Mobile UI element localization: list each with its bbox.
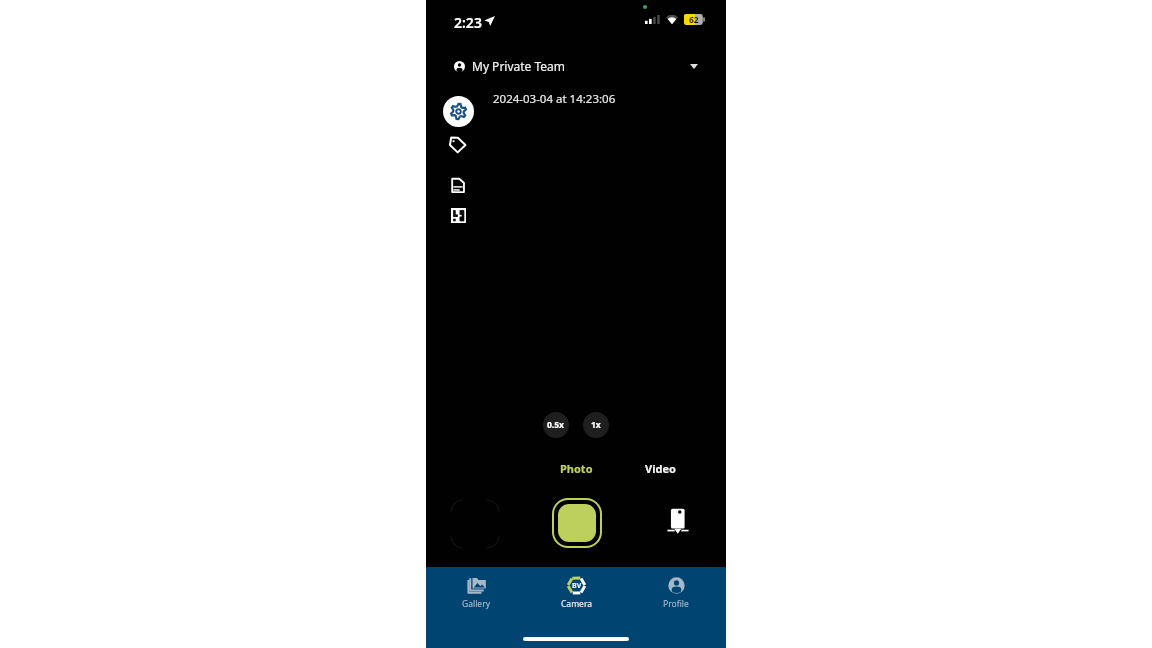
button[interactable]: My Private Team — [454, 54, 704, 78]
staticText: BV — [572, 581, 582, 591]
staticText: Gallery — [462, 598, 490, 610]
button[interactable]: 1x — [583, 412, 609, 438]
button[interactable]: Notes — [449, 176, 467, 194]
staticText: Camera — [561, 598, 592, 610]
button[interactable]: Gallery — [452, 575, 500, 610]
staticText: Video — [645, 461, 676, 476]
staticText: 1x — [591, 419, 601, 431]
button[interactable]: Scan code — [449, 206, 467, 224]
button[interactable]: Tags — [447, 136, 467, 154]
staticText: 0.5x — [547, 419, 565, 431]
staticText: 2024-03-04 at 14:23:06 — [493, 91, 616, 107]
staticText: My Private Team — [472, 58, 566, 74]
button[interactable]: Take photo — [552, 498, 602, 548]
button[interactable]: Photo — [552, 458, 600, 478]
button[interactable]: Change team — [676, 54, 704, 78]
button[interactable]: Switch camera — [667, 508, 693, 534]
button[interactable]: BV — [552, 575, 600, 610]
staticText: Profile — [663, 598, 689, 610]
staticText: 2:23 — [454, 13, 482, 32]
button[interactable]: Settings — [443, 96, 474, 127]
staticText: Photo — [560, 461, 593, 476]
button[interactable]: Profile — [652, 575, 700, 610]
button[interactable]: 0.5x — [543, 412, 569, 438]
button[interactable]: Video — [636, 458, 684, 478]
staticText: 62 — [689, 14, 699, 25]
